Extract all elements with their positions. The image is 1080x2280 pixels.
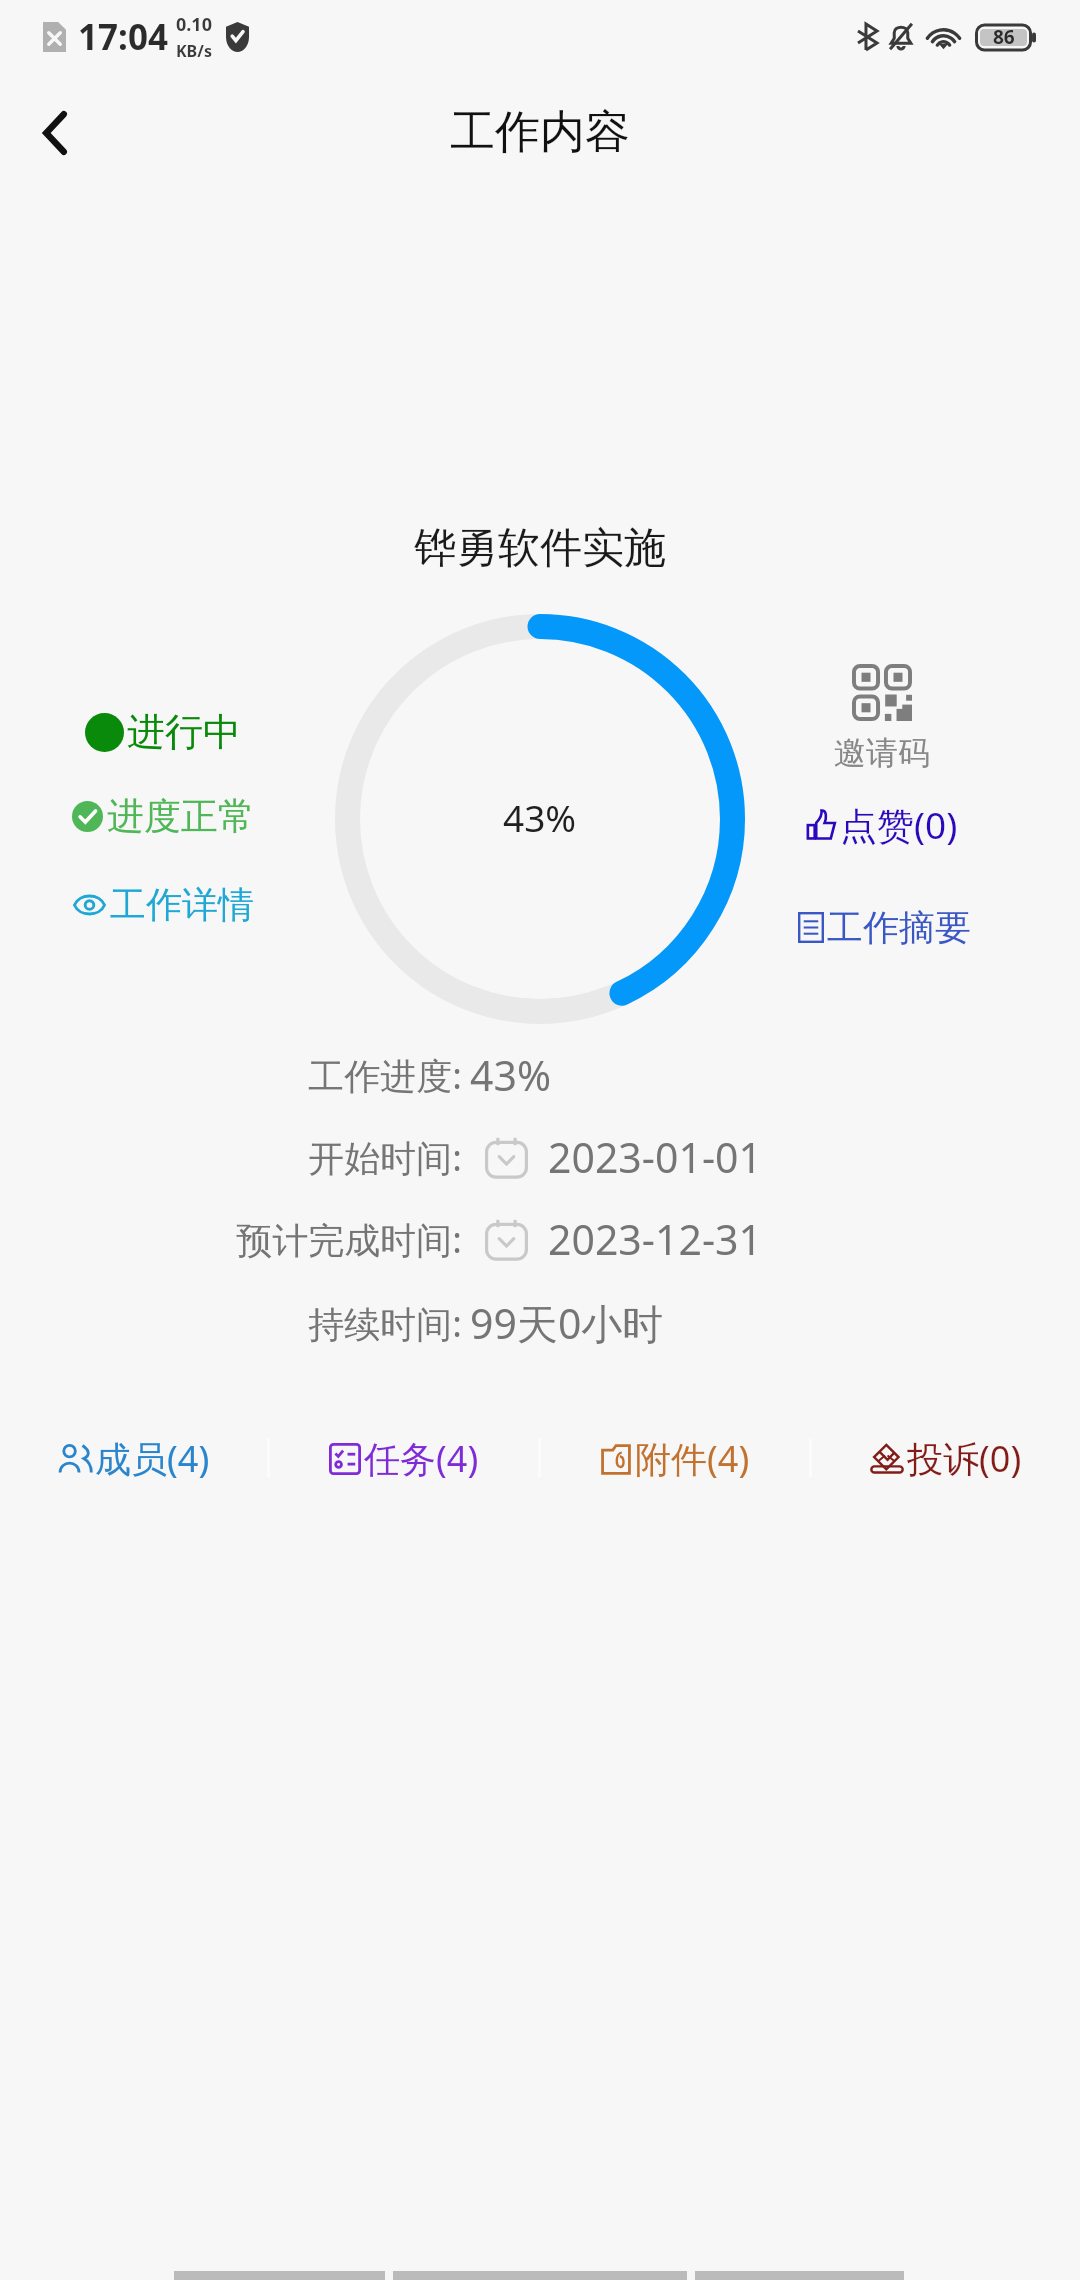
staticText: 邀请码 xyxy=(834,733,930,773)
button[interactable]: 附件(4) xyxy=(541,1413,809,1503)
staticText: KB/s xyxy=(176,40,212,62)
staticText: 99天0小时 xyxy=(470,1295,664,1351)
button[interactable]: 邀请码 xyxy=(834,664,930,773)
staticText: 铧勇软件实施 xyxy=(414,522,666,575)
button[interactable]: 工作详情 xyxy=(73,882,254,927)
staticText: 工作进度: xyxy=(308,1051,462,1100)
button[interactable]: 投诉(0) xyxy=(812,1413,1080,1503)
staticText: 17:04 xyxy=(78,13,168,61)
button[interactable]: 进度正常 xyxy=(72,793,255,840)
staticText: 2023-01-01 xyxy=(548,1129,763,1185)
button[interactable]: 工作摘要 xyxy=(798,905,971,950)
staticText: 开始时间: xyxy=(308,1133,462,1182)
staticText: 工作内容 xyxy=(450,104,630,161)
staticText: 预计完成时间: xyxy=(236,1215,462,1264)
staticText: 成员(4) xyxy=(95,1434,210,1483)
button[interactable]: 点赞(0) xyxy=(806,799,958,850)
staticText: 投诉(0) xyxy=(907,1434,1022,1483)
staticText: 进行中 xyxy=(127,708,241,756)
staticText: 86 xyxy=(993,24,1015,50)
staticText: 附件(4) xyxy=(635,1434,750,1483)
button[interactable]: 任务(4) xyxy=(270,1413,538,1503)
staticText: 进度正常 xyxy=(107,793,255,840)
button[interactable]: Back xyxy=(2,80,107,185)
button[interactable]: 成员(4) xyxy=(0,1413,267,1503)
staticText: 任务(4) xyxy=(364,1434,479,1483)
staticText: 43% xyxy=(470,1047,551,1103)
staticText: 43% xyxy=(503,792,577,842)
staticText: 2023-12-31 xyxy=(548,1211,763,1267)
staticText: 0.10 xyxy=(176,12,212,37)
staticText: 持续时间: xyxy=(308,1299,462,1348)
button[interactable]: 进行中 xyxy=(85,708,241,756)
staticText: 工作摘要 xyxy=(827,905,971,950)
staticText: 点赞(0) xyxy=(840,799,958,850)
staticText: 工作详情 xyxy=(110,882,254,927)
